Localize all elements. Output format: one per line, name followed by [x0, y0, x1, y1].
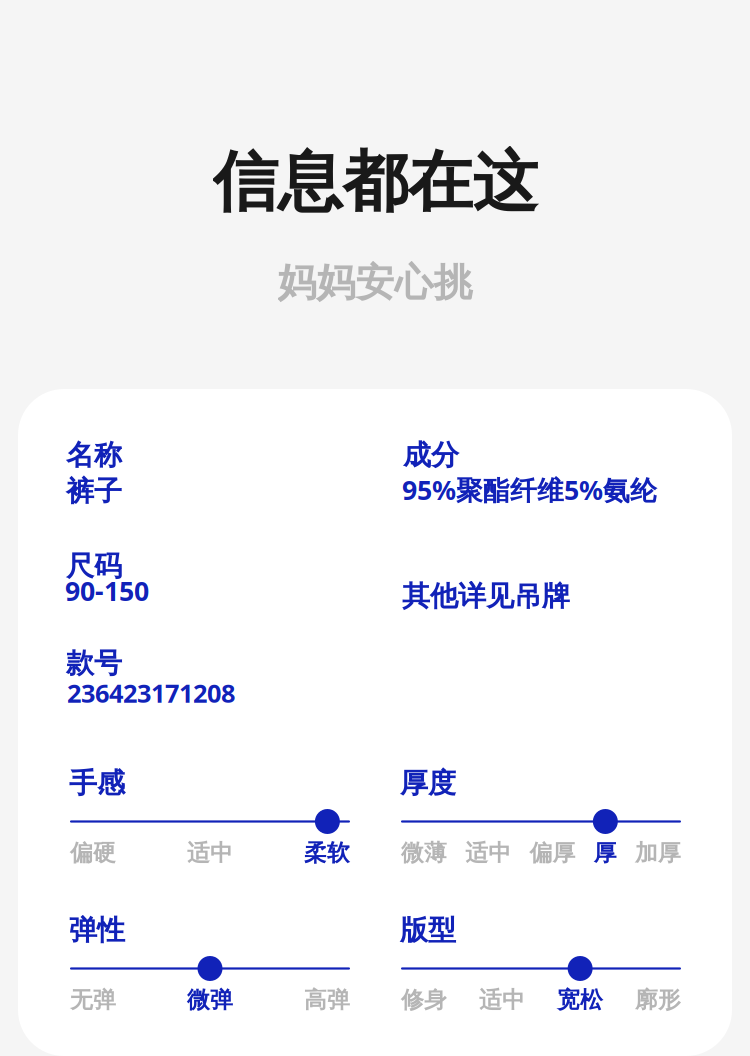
button[interactable]: 加厚 [635, 839, 681, 867]
staticText: 信息都在这 [212, 142, 537, 222]
staticText: 无弹 [70, 986, 116, 1014]
staticText: 高弹 [304, 986, 350, 1014]
button[interactable]: 柔软 [304, 839, 350, 867]
staticText: 宽松 [557, 986, 603, 1014]
button[interactable]: 适中 [187, 839, 233, 867]
staticText: 其他详见吊牌 [402, 579, 570, 613]
staticText: 236423171208 [67, 676, 235, 710]
staticText: 微弹 [187, 986, 233, 1014]
staticText: 适中 [479, 986, 525, 1014]
button[interactable]: 宽松 [557, 986, 603, 1014]
staticText: 偏硬 [70, 839, 116, 867]
button[interactable]: 廓形 [635, 986, 681, 1014]
button[interactable]: 修身 [401, 986, 447, 1014]
button[interactable]: 微薄 [401, 839, 447, 867]
button[interactable]: 微弹 [187, 986, 233, 1014]
staticText: 成分 [403, 438, 459, 472]
button[interactable]: 适中 [479, 986, 525, 1014]
staticText: 尺码 [66, 549, 122, 583]
staticText: 裤子 [66, 474, 122, 508]
staticText: 款号 [66, 646, 122, 680]
button[interactable]: 适中 [465, 839, 511, 867]
button[interactable]: 偏厚 [529, 839, 575, 867]
staticText: 妈妈安心挑 [277, 259, 472, 306]
button[interactable]: 无弹 [70, 986, 116, 1014]
staticText: 90-150 [65, 573, 149, 608]
staticText: 修身 [401, 986, 447, 1014]
staticText: 加厚 [635, 839, 681, 867]
staticText: 柔软 [304, 839, 350, 867]
staticText: 厚 [594, 839, 617, 867]
staticText: 版型 [400, 913, 456, 947]
staticText: 适中 [187, 839, 233, 867]
staticText: 95%聚酯纤维5%氨纶 [402, 472, 657, 507]
button[interactable]: 偏硬 [70, 839, 116, 867]
staticText: 偏厚 [529, 839, 575, 867]
button[interactable]: 高弹 [304, 986, 350, 1014]
staticText: 适中 [465, 839, 511, 867]
staticText: 手感 [69, 766, 125, 800]
staticText: 微薄 [401, 839, 447, 867]
staticText: 廓形 [635, 986, 681, 1014]
staticText: 名称 [66, 438, 122, 472]
staticText: 厚度 [400, 766, 456, 800]
button[interactable]: 厚 [594, 839, 617, 867]
staticText: 弹性 [69, 913, 125, 947]
